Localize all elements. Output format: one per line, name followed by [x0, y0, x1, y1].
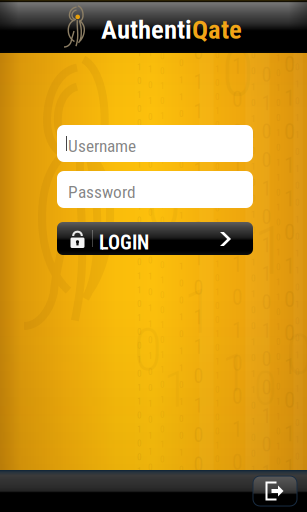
staticText: 1 [251, 241, 256, 252]
staticText: 1 [232, 219, 243, 244]
button[interactable]: LOGIN [57, 222, 253, 255]
staticText: 0 [251, 177, 256, 188]
staticText: 1 [160, 6, 165, 17]
staticText: 1 [284, 420, 295, 447]
staticText: 1 [261, 461, 271, 485]
staticText: 0 [295, 45, 300, 56]
staticText: 1 [137, 0, 142, 3]
staticText: 0 [137, 452, 142, 463]
staticText: 0 [232, 87, 243, 112]
staticText: 1 [251, 129, 256, 140]
staticText: 1 [137, 201, 142, 212]
staticText: 0 [137, 480, 142, 490]
staticText: 1 [193, 247, 203, 270]
button[interactable]: Log out [253, 476, 297, 506]
button[interactable]: Password [57, 171, 253, 208]
staticText: 0 [232, 21, 243, 46]
staticText: 1 [137, 61, 142, 72]
staticText: 1 [160, 245, 165, 256]
staticText: 0 [148, 79, 153, 90]
staticText: 1 [215, 0, 220, 5]
staticText: 0 [215, 203, 220, 214]
staticText: 0 [261, 376, 271, 399]
staticText: Password [68, 182, 136, 202]
staticText: 0 [137, 326, 142, 337]
staticText: 1 [284, 0, 295, 10]
staticText: 1 [261, 92, 271, 115]
staticText: 1 [137, 382, 142, 393]
staticText: 0 [193, 276, 203, 300]
staticText: 1 [215, 217, 220, 228]
staticText: 0 [137, 6, 142, 17]
staticText: 0 [145, 160, 181, 247]
staticText: 0 [148, 334, 153, 345]
staticText: 1 [179, 227, 184, 238]
staticText: 0 [253, 360, 276, 416]
staticText: 0 [148, 32, 153, 43]
staticText: 1 [261, 490, 271, 512]
staticText: 0 [193, 188, 203, 211]
staticText: 1 [261, 35, 271, 58]
staticText: 0 [137, 215, 142, 226]
staticText: 1 [137, 396, 142, 407]
staticText: 1 [251, 496, 256, 507]
staticText: 0 [261, 348, 271, 371]
staticText: 0 [295, 366, 300, 377]
staticText: 1 [137, 466, 142, 476]
staticText: 0 [215, 8, 220, 19]
staticText: 0 [284, 387, 295, 413]
staticText: 1 [160, 200, 165, 211]
staticText: 0 [232, 120, 243, 145]
button[interactable]: Username [57, 125, 253, 162]
staticText: 0 [284, 17, 295, 44]
staticText: Username [68, 136, 136, 156]
staticText: 0 [232, 186, 243, 211]
staticText: 0 [215, 161, 220, 172]
staticText: 0 [261, 120, 271, 143]
staticText: 1 [137, 270, 142, 281]
